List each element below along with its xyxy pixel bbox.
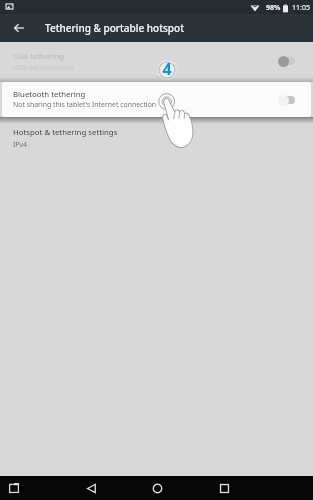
- button[interactable]: USB tethering: [0, 41, 313, 81]
- staticText: 11:05: [292, 3, 310, 13]
- staticText: USB tethering: [13, 51, 65, 62]
- staticText: Not sharing this tablet's Internet conne…: [13, 100, 157, 109]
- staticText: 98%: [266, 3, 281, 13]
- button[interactable]: Screenshot: [3, 476, 25, 500]
- staticText: Hotspot & tethering settings: [13, 127, 118, 138]
- button[interactable]: Hotspot & tethering settings: [0, 121, 313, 155]
- button[interactable]: Bluetooth tethering: [2, 82, 311, 117]
- staticText: USB not connected: [13, 63, 75, 72]
- button[interactable]: Recents: [212, 476, 236, 500]
- button[interactable]: Home: [145, 476, 169, 500]
- button[interactable]: Back: [79, 476, 103, 500]
- staticText: 4: [162, 58, 172, 78]
- staticText: IPv4: [13, 140, 27, 149]
- staticText: Bluetooth tethering: [13, 89, 86, 100]
- button[interactable]: Back: [5, 14, 33, 42]
- staticText: Tethering & portable hotspot: [45, 21, 185, 35]
